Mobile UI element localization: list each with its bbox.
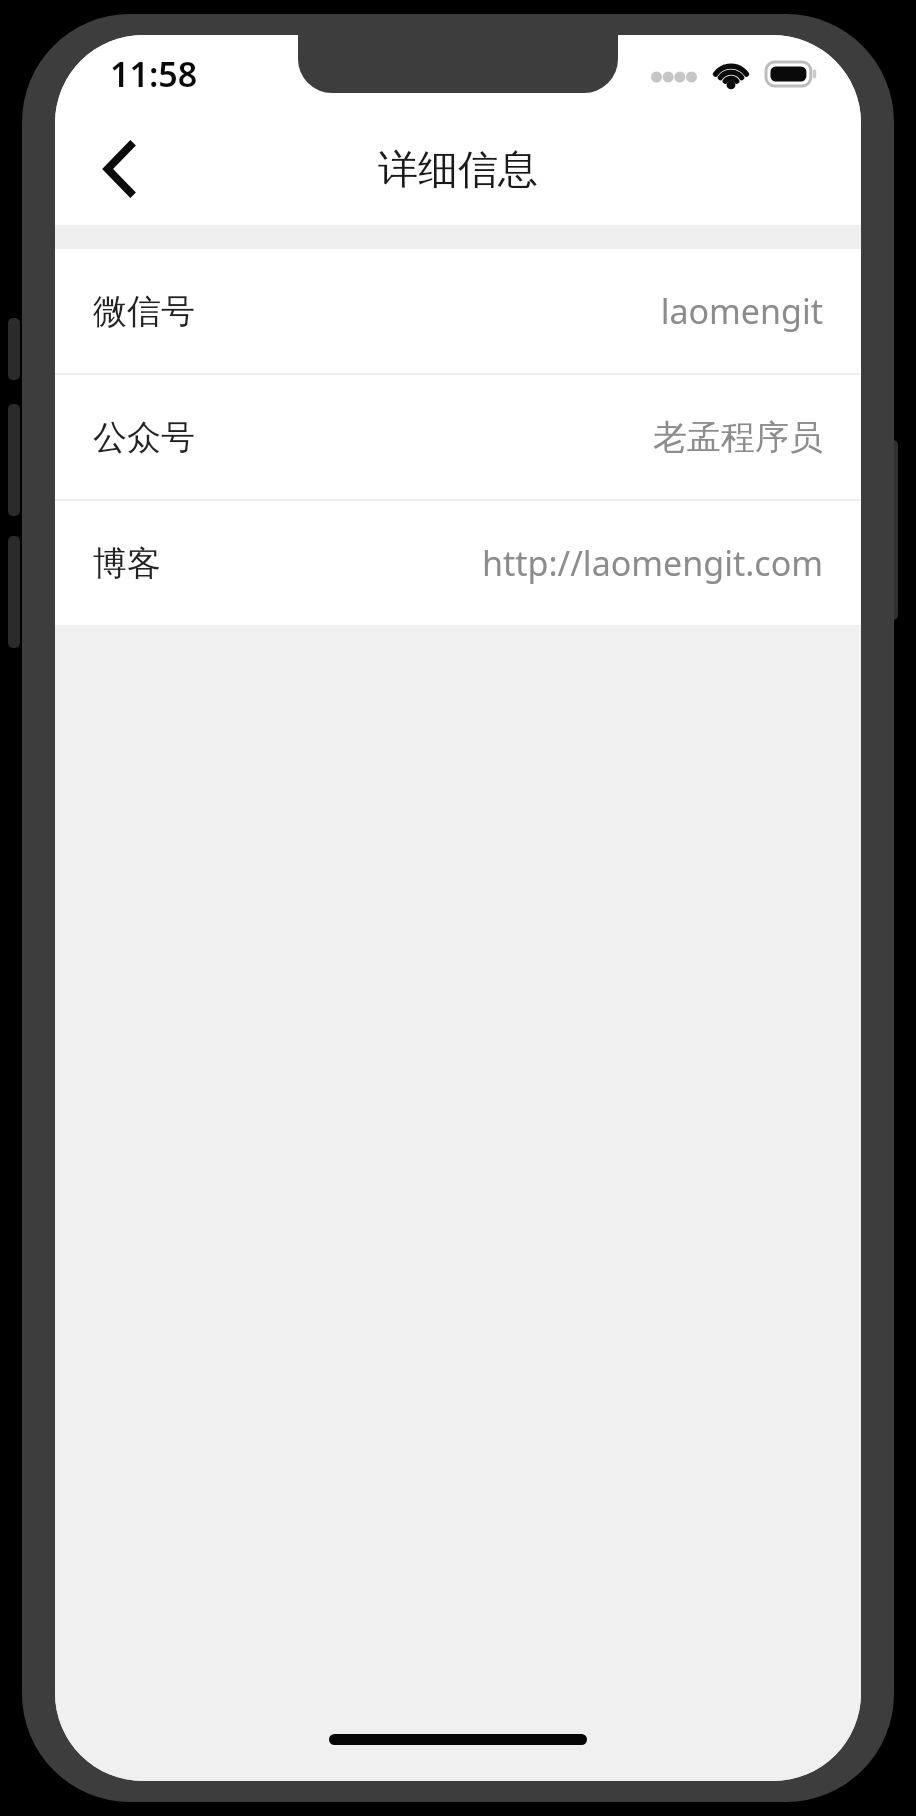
staticText: http://laomengit.com: [481, 540, 823, 586]
staticText: 微信号: [93, 290, 195, 333]
button[interactable]: 博客: [55, 501, 861, 625]
staticText: 11:58: [110, 51, 198, 97]
staticText: 详细信息: [378, 144, 538, 194]
staticText: 老孟程序员: [653, 416, 823, 459]
staticText: laomengit: [660, 288, 823, 334]
button[interactable]: 微信号: [55, 249, 861, 373]
button[interactable]: Back: [71, 121, 167, 217]
staticText: 博客: [93, 542, 161, 585]
staticText: 公众号: [93, 416, 195, 459]
button[interactable]: 公众号: [55, 375, 861, 499]
